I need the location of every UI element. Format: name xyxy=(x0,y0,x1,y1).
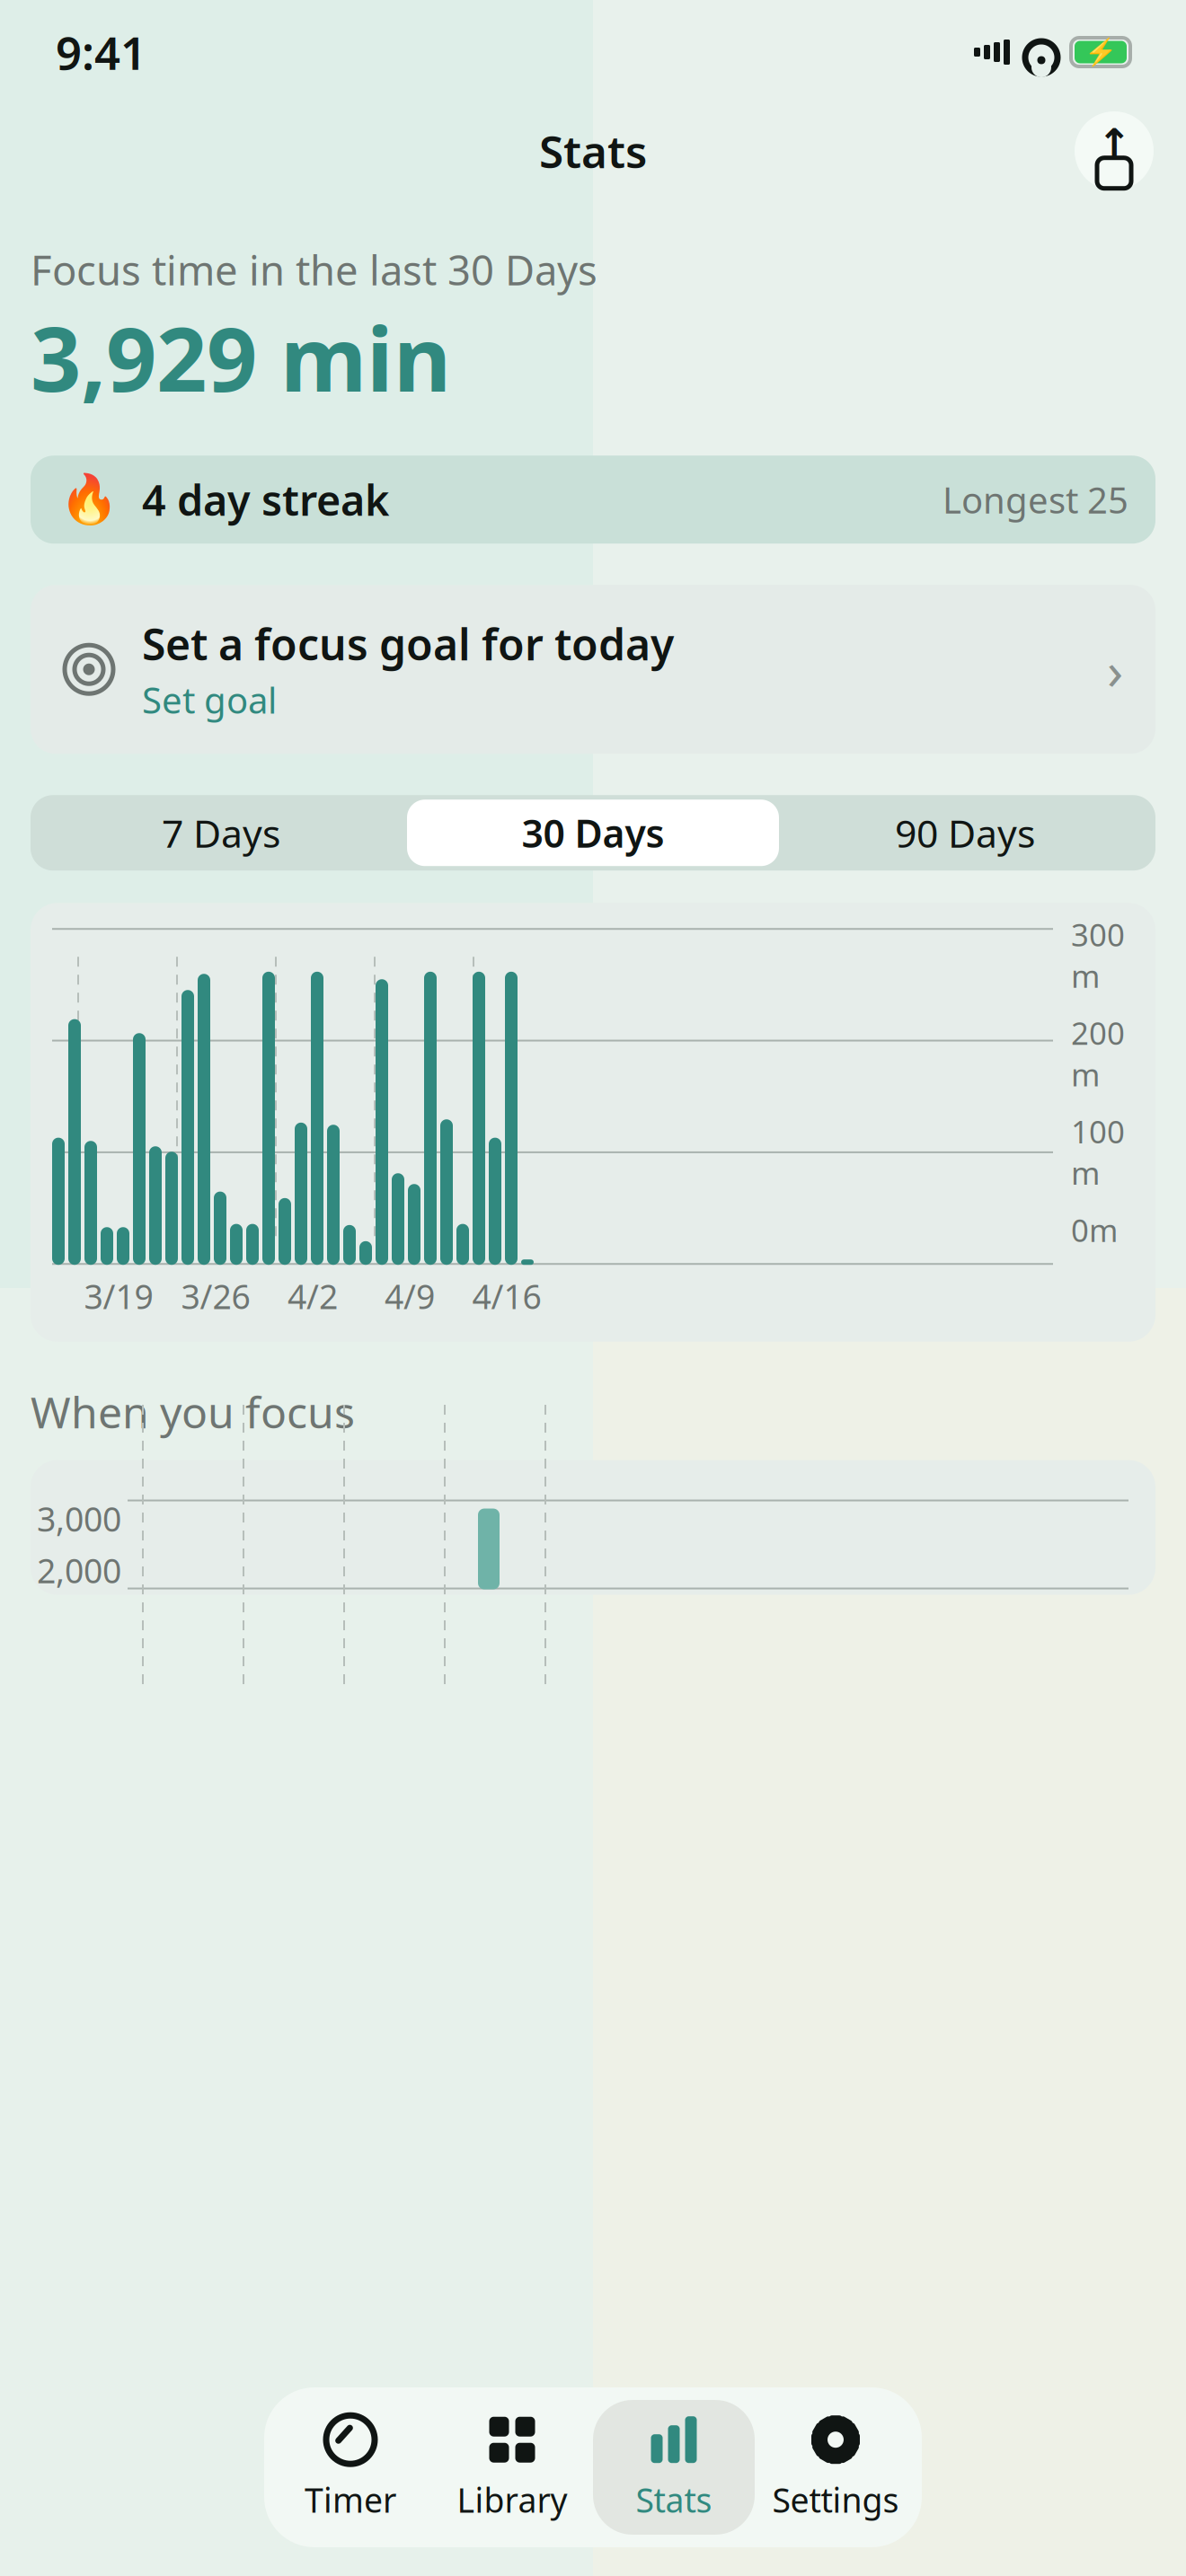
staticText: Settings xyxy=(772,2477,899,2522)
staticText: When you focus xyxy=(31,1383,355,1440)
staticText: 30 Days xyxy=(522,807,664,858)
button[interactable]: 90 Days xyxy=(779,800,1151,866)
button[interactable]: Stats xyxy=(593,2400,755,2535)
staticText: › xyxy=(1107,634,1123,704)
button[interactable]: Share xyxy=(1075,111,1154,190)
staticText: 100m xyxy=(1071,1111,1125,1193)
staticText: 4 day streak xyxy=(142,472,389,527)
staticText: Longest 25 xyxy=(943,476,1128,523)
staticText: Stats xyxy=(539,121,647,180)
staticText: 4/9 xyxy=(385,1274,435,1318)
staticText: 0m xyxy=(1071,1209,1118,1250)
staticText: Stats xyxy=(636,2477,712,2522)
staticText: 9:41 xyxy=(56,22,146,82)
staticText: 2,000 xyxy=(37,1548,121,1593)
staticText: Set a focus goal for today xyxy=(142,615,674,672)
staticText: 3,929 min xyxy=(31,298,451,416)
staticText: 200m xyxy=(1071,1012,1125,1095)
staticText: Focus time in the last 30 Days xyxy=(31,243,597,297)
staticText: 🔥 xyxy=(59,472,119,527)
staticText: 7 Days xyxy=(162,807,280,858)
button[interactable]: Timer xyxy=(270,2400,431,2535)
staticText: ⚡ xyxy=(1084,37,1117,67)
staticText: 300m xyxy=(1071,914,1125,996)
button[interactable]: Settings xyxy=(755,2400,916,2535)
button[interactable]: Library xyxy=(431,2400,593,2535)
staticText: 4/16 xyxy=(472,1274,541,1318)
staticText: ↑ xyxy=(1097,121,1131,167)
staticText: 3,000 xyxy=(37,1496,121,1541)
staticText: 90 Days xyxy=(895,807,1035,858)
staticText: 3/19 xyxy=(84,1274,153,1318)
button[interactable]: 🔥 xyxy=(31,456,1155,544)
staticText: 3/26 xyxy=(181,1274,250,1318)
staticText: Set goal xyxy=(142,676,277,724)
staticText: Library xyxy=(457,2477,567,2522)
staticText: 4/2 xyxy=(288,1274,338,1318)
staticText: Timer xyxy=(305,2477,396,2522)
button[interactable]: 30 Days xyxy=(407,800,779,866)
button[interactable]: Set a focus goal for today xyxy=(31,585,1155,754)
button[interactable]: 7 Days xyxy=(35,800,407,866)
